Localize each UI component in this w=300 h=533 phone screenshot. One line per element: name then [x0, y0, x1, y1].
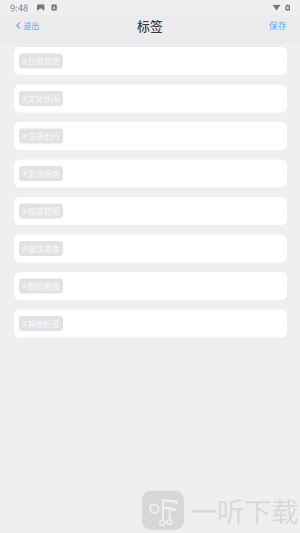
- staticText: #服装鞋帽: [22, 205, 59, 217]
- button[interactable]: #日用百货: [14, 47, 287, 75]
- staticText: #生活服务: [22, 167, 59, 179]
- button[interactable]: #交通出行: [14, 122, 287, 150]
- staticText: #数码电器: [22, 280, 59, 292]
- button[interactable]: #服装鞋帽: [14, 197, 287, 225]
- staticText: 保存: [269, 19, 287, 32]
- staticText: 9:48: [10, 1, 28, 14]
- button[interactable]: #数码电器: [14, 272, 287, 300]
- button[interactable]: #餐饮美食: [14, 234, 287, 262]
- staticText: #交通出行: [22, 130, 59, 142]
- staticText: 标签: [137, 16, 163, 35]
- staticText: 一听下载: [190, 490, 298, 530]
- staticText: 退出: [23, 20, 39, 31]
- button[interactable]: #文化休闲: [14, 84, 287, 112]
- staticText: #餐饮美食: [22, 242, 59, 254]
- button[interactable]: #生活服务: [14, 159, 287, 187]
- button[interactable]: 保存: [259, 15, 300, 36]
- staticText: #其他标签: [22, 317, 59, 329]
- staticText: #日用百货: [22, 55, 59, 67]
- staticText: #文化休闲: [22, 92, 59, 104]
- button[interactable]: #其他标签: [14, 309, 287, 337]
- button[interactable]: 退出: [0, 15, 49, 36]
